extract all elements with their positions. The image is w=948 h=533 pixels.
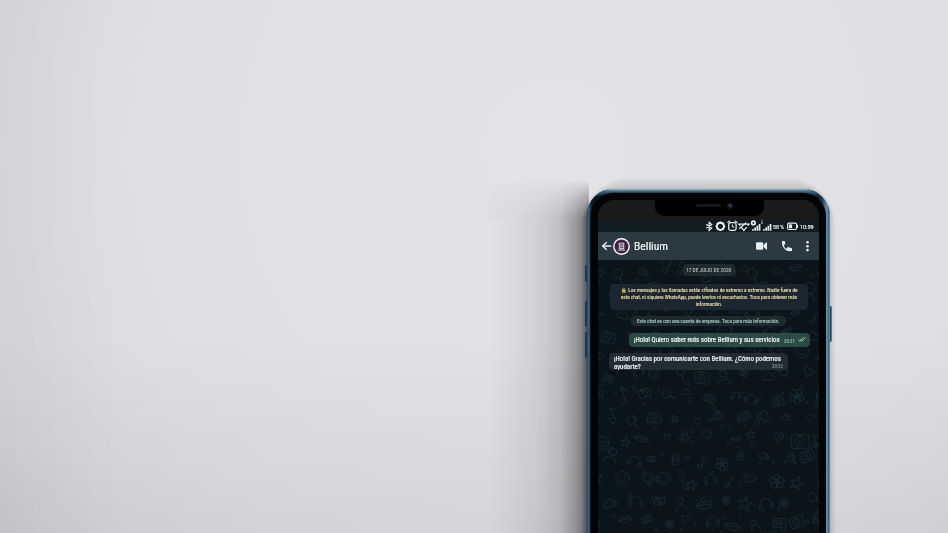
button[interactable]: Video call — [750, 232, 772, 260]
staticText: ¡Hola! Quiero saber más sobre Bellium y … — [634, 336, 780, 344]
button[interactable]: Voice call — [776, 232, 797, 260]
staticText: 20:31 — [784, 338, 796, 344]
staticText: ¡Hola! Gracias por comunicarte con Belli… — [614, 355, 784, 370]
staticText: 17 DE JULIO DE 2020 — [686, 267, 732, 273]
button[interactable]: More options — [800, 232, 815, 260]
staticText: 10:59 — [800, 223, 814, 230]
staticText: Este chat es con una cuenta de empresa. … — [637, 318, 780, 324]
staticText: 20:32 — [772, 363, 784, 369]
button[interactable]: Bellium — [613, 232, 733, 260]
staticText: Bellium — [634, 239, 669, 253]
button[interactable]: ¡Hola! Gracias por comunicarte con Belli… — [609, 353, 788, 370]
staticText: 🔒 Los mensajes y las llamadas están cifr… — [620, 287, 798, 307]
staticText: 58 % — [773, 223, 785, 230]
button[interactable]: Back — [598, 233, 615, 259]
